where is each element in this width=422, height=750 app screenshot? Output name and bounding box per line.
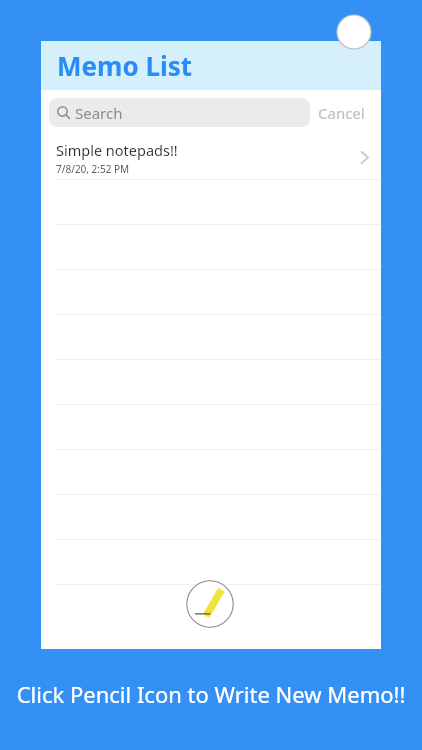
staticText: 7/8/20, 2:52 PM (56, 162, 130, 176)
staticText: Click Pencil Icon to Write New Memo!! (0, 679, 422, 709)
staticText: Simple notepads!! (56, 140, 178, 160)
button[interactable]: Search (49, 98, 310, 127)
button[interactable]: Simple notepads!! (41, 135, 381, 180)
button[interactable]: Write new memo (186, 580, 234, 628)
staticText: Memo List (57, 48, 193, 83)
staticText: Search (75, 103, 123, 123)
button[interactable]: Cancel (310, 99, 373, 127)
staticText: Cancel (318, 103, 365, 123)
button[interactable] (41, 540, 381, 585)
